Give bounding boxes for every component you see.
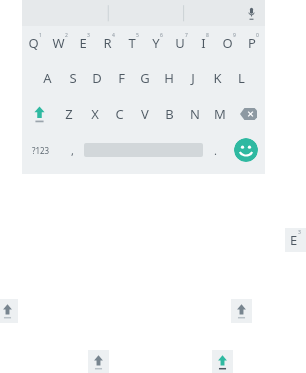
button[interactable]: J	[181, 60, 205, 96]
staticText: S	[69, 69, 77, 87]
staticText: N	[190, 105, 200, 123]
staticText: 6	[160, 32, 163, 39]
staticText: D	[92, 69, 102, 87]
button[interactable]: Shift	[22, 96, 56, 132]
button[interactable]: K	[205, 60, 229, 96]
button[interactable]: N	[182, 96, 207, 132]
staticText: I	[201, 34, 206, 52]
button[interactable]: F	[109, 60, 133, 96]
staticText: Z	[65, 105, 73, 123]
button[interactable]: Backspace	[232, 96, 265, 132]
button[interactable]: M	[207, 96, 232, 132]
button[interactable]: T	[121, 26, 145, 60]
staticText: .	[214, 143, 217, 158]
button[interactable]: S	[60, 60, 85, 96]
staticText: L	[238, 69, 245, 87]
staticText: C	[115, 105, 124, 123]
staticText: 7	[185, 32, 188, 39]
button[interactable]: R	[97, 26, 121, 60]
staticText: F	[118, 69, 125, 87]
button[interactable]: H	[157, 60, 181, 96]
staticText: 5	[136, 32, 139, 39]
button[interactable]: I	[193, 26, 217, 60]
button[interactable]: Shift	[0, 299, 18, 323]
button[interactable]: E	[72, 26, 97, 60]
staticText: M	[214, 105, 226, 123]
button[interactable]: Shift	[88, 350, 109, 373]
staticText: Q	[28, 34, 39, 52]
staticText: 2	[65, 32, 68, 39]
button[interactable]: X	[82, 96, 107, 132]
button[interactable]: Y	[145, 26, 169, 60]
staticText: H	[164, 69, 174, 87]
staticText: U	[175, 34, 185, 52]
staticText: K	[213, 69, 222, 87]
staticText: E	[79, 34, 87, 52]
staticText: 3	[87, 32, 90, 39]
staticText: P	[248, 34, 256, 52]
button[interactable]: C	[107, 96, 132, 132]
staticText: 8	[206, 32, 209, 39]
staticText: X	[91, 105, 99, 123]
staticText: T	[128, 34, 136, 52]
button[interactable]: L	[229, 60, 253, 96]
staticText: A	[43, 69, 52, 87]
button[interactable]: Emoji	[234, 138, 258, 162]
staticText: E	[290, 231, 298, 249]
button[interactable]: ?123	[22, 132, 60, 168]
staticText: Y	[152, 34, 160, 52]
button[interactable]: B	[157, 96, 182, 132]
staticText: 4	[112, 32, 115, 39]
button[interactable]: Shift	[212, 350, 233, 373]
staticText: G	[140, 69, 150, 87]
button[interactable]: O	[217, 26, 241, 60]
button[interactable]: A	[35, 60, 60, 96]
button[interactable]: D	[85, 60, 109, 96]
staticText: 0	[256, 32, 259, 39]
staticText: ?123	[32, 145, 50, 156]
button[interactable]: Q	[22, 26, 47, 60]
button[interactable]: .	[203, 132, 227, 168]
staticText: J	[191, 69, 195, 87]
button[interactable]: E	[285, 228, 306, 252]
staticText: O	[222, 34, 233, 52]
staticText: B	[165, 105, 174, 123]
button[interactable]: Voice input	[243, 5, 259, 21]
button[interactable]: Shift	[231, 299, 252, 323]
button[interactable]: W	[47, 26, 72, 60]
staticText: 9	[233, 32, 236, 39]
button[interactable]: U	[169, 26, 193, 60]
button[interactable]: G	[133, 60, 157, 96]
button[interactable]: Z	[56, 96, 82, 132]
button[interactable]: P	[241, 26, 265, 60]
staticText: W	[52, 34, 65, 52]
button[interactable]: V	[132, 96, 157, 132]
staticText: ,	[71, 143, 74, 158]
button[interactable]: ,	[60, 132, 84, 168]
staticText: 1	[39, 32, 42, 39]
staticText: V	[141, 105, 149, 123]
staticText: 3	[298, 229, 301, 236]
staticText: R	[103, 34, 112, 52]
